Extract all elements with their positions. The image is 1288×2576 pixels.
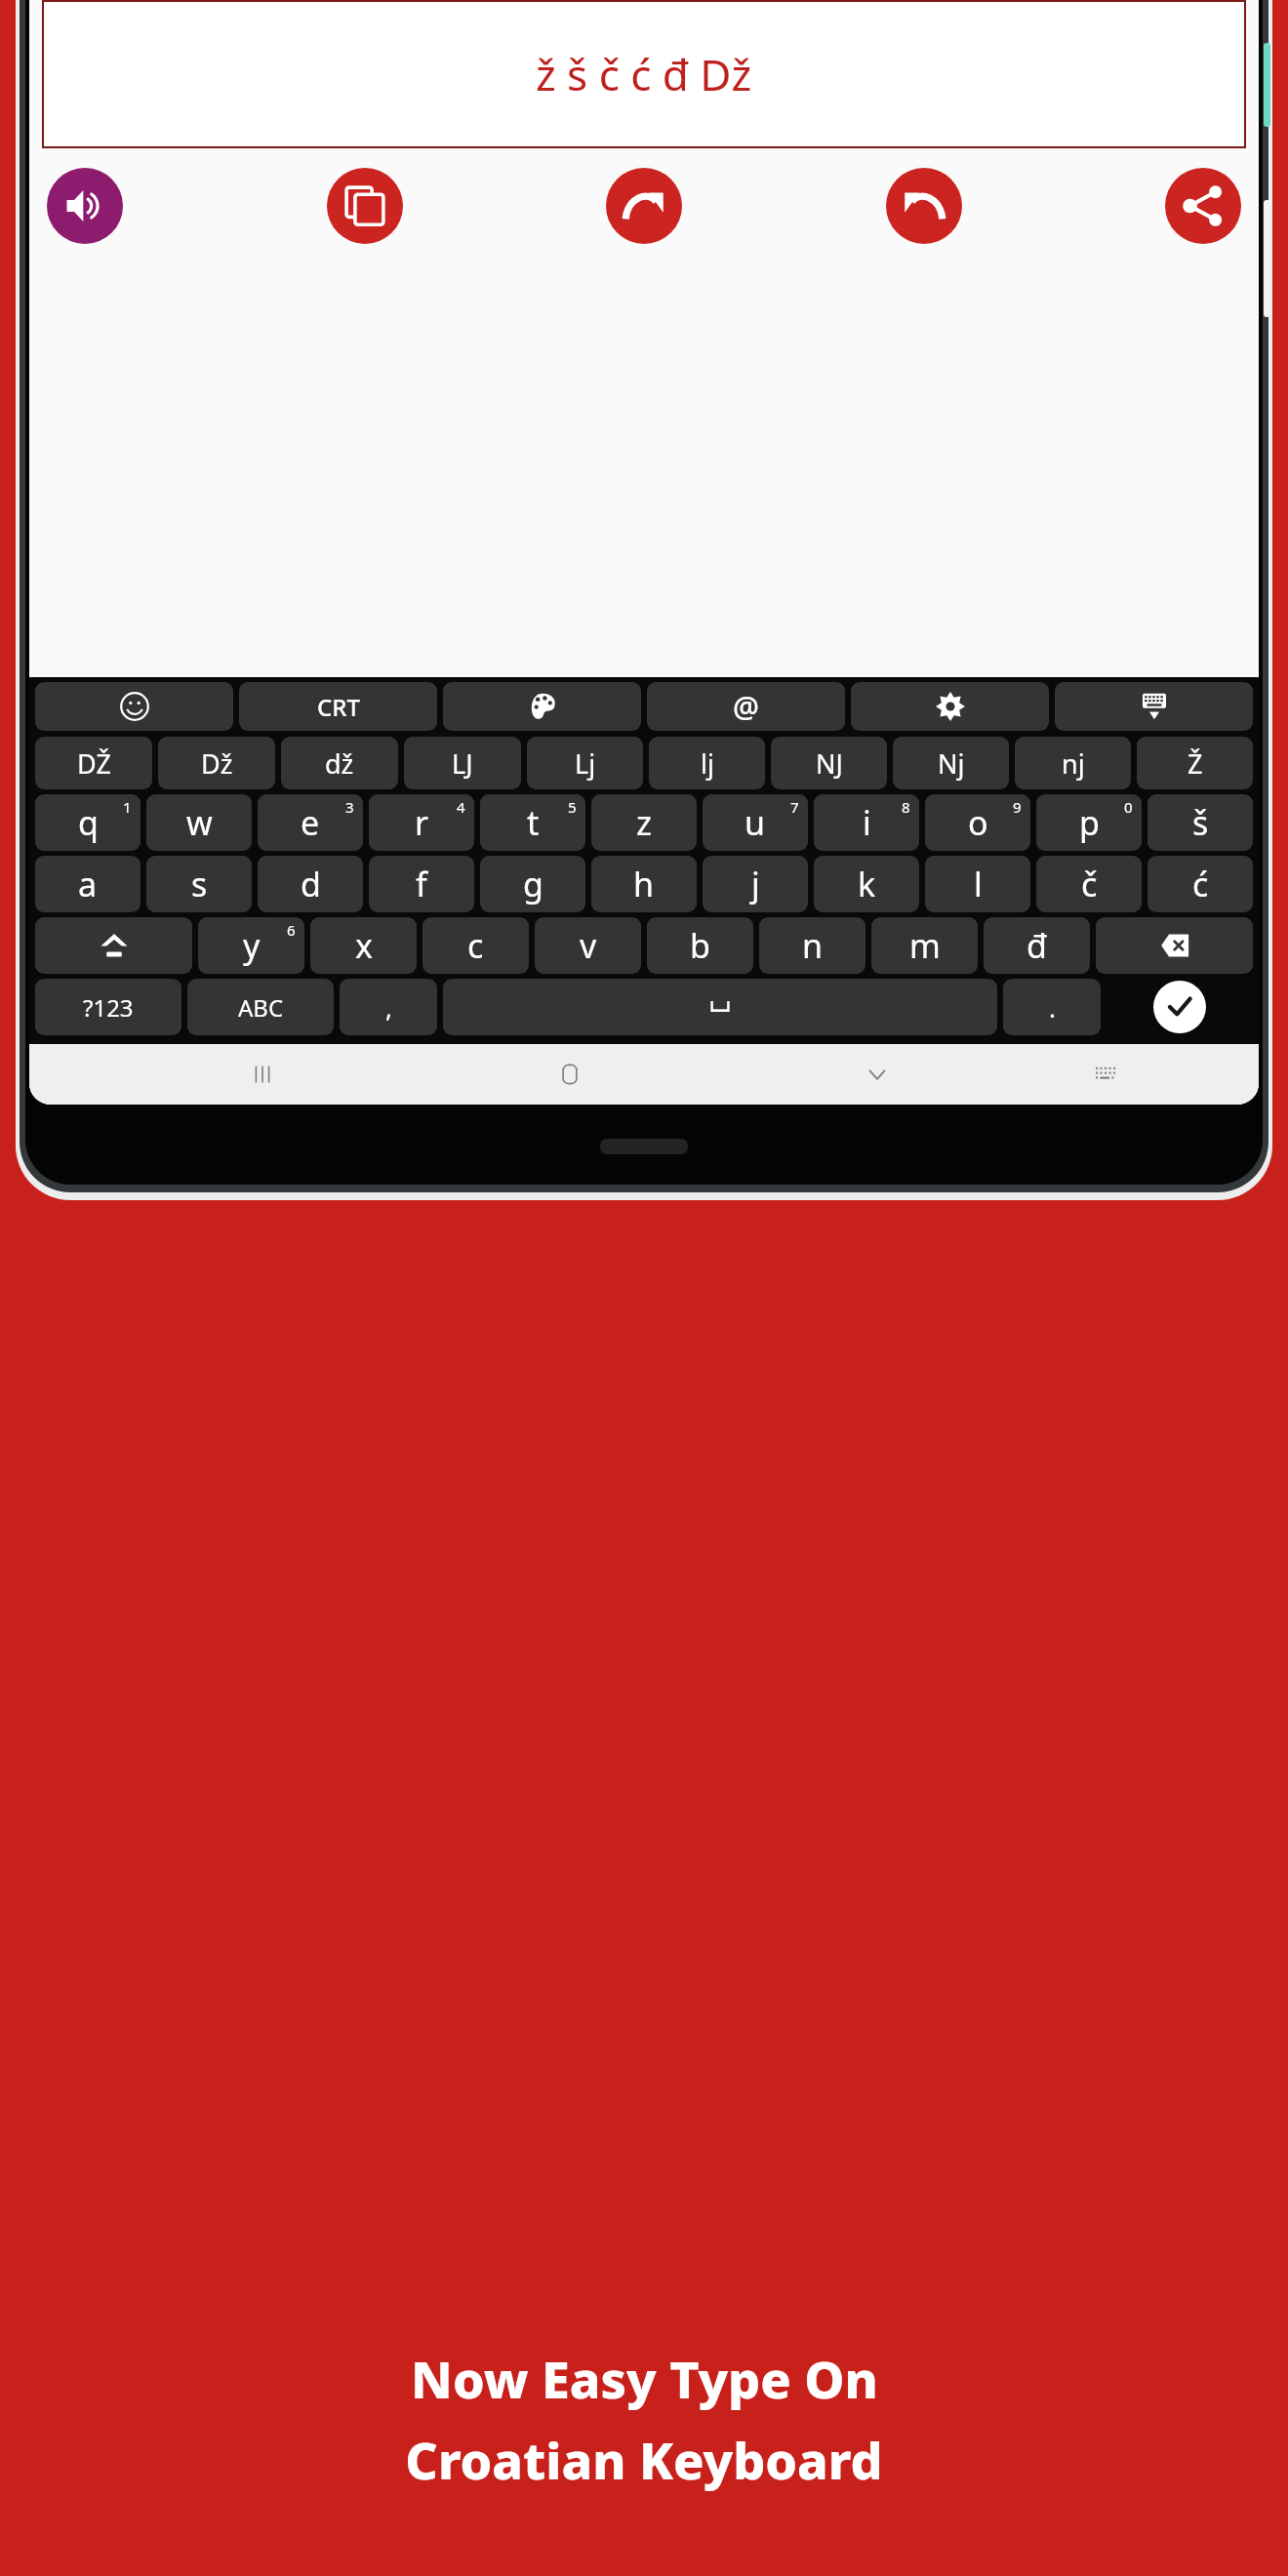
button[interactable]: Key (1096, 917, 1253, 974)
button[interactable]: Hide keyboard (850, 1047, 905, 1102)
button[interactable]: s (146, 856, 252, 912)
button[interactable]: t (480, 794, 585, 851)
staticText: f (416, 862, 427, 906)
button[interactable]: Redo (606, 168, 682, 244)
button[interactable]: n (759, 917, 865, 974)
button[interactable]: Change keyboard (1077, 1047, 1132, 1102)
button[interactable]: v (535, 917, 641, 974)
button[interactable]: Key (35, 917, 192, 974)
button[interactable]: NJ (771, 737, 887, 789)
button[interactable]: LJ (404, 737, 521, 789)
button[interactable]: j (703, 856, 808, 912)
button[interactable]: Key (851, 682, 1049, 731)
staticText: g (523, 862, 543, 906)
button[interactable]: c (423, 917, 529, 974)
button[interactable]: a (35, 856, 141, 912)
button[interactable]: l (925, 856, 1030, 912)
button[interactable]: dž (281, 737, 398, 789)
button[interactable]: d (258, 856, 363, 912)
button[interactable]: ABC (187, 979, 334, 1035)
staticText: nj (1062, 745, 1085, 782)
button[interactable]: u (703, 794, 808, 851)
staticText: u (745, 800, 766, 845)
button[interactable]: w (146, 794, 252, 851)
button[interactable]: nj (1015, 737, 1131, 789)
button[interactable]: f (369, 856, 474, 912)
staticText: n (802, 923, 824, 968)
staticText: 1 (123, 797, 132, 817)
staticText: a (78, 862, 98, 906)
button[interactable]: Ž (1137, 737, 1253, 789)
button[interactable]: lj (649, 737, 765, 789)
staticText: 8 (902, 797, 910, 817)
button[interactable]: i (814, 794, 919, 851)
staticText: b (690, 923, 710, 968)
staticText: r (415, 800, 429, 845)
button[interactable]: Key (35, 682, 233, 731)
button[interactable]: Dž (158, 737, 275, 789)
staticText: ž š č ć đ Dž (536, 45, 752, 103)
staticText: Nj (938, 745, 965, 782)
button[interactable]: h (591, 856, 697, 912)
staticText: c (467, 923, 484, 968)
staticText: m (909, 923, 941, 968)
button[interactable]: ?123 (35, 979, 181, 1035)
button[interactable]: . (1003, 979, 1101, 1035)
button[interactable]: đ (984, 917, 1090, 974)
button[interactable]: Key (443, 979, 997, 1035)
button[interactable]: , (340, 979, 437, 1035)
button[interactable]: r (369, 794, 474, 851)
button[interactable]: š (1147, 794, 1253, 851)
button[interactable]: @ (647, 682, 845, 731)
button[interactable]: Key (1055, 682, 1253, 731)
button[interactable]: y (198, 917, 304, 974)
staticText: LJ (452, 745, 473, 782)
staticText: Croatian Keyboard (405, 2425, 883, 2494)
staticText: 7 (790, 797, 799, 817)
button[interactable]: k (814, 856, 919, 912)
staticText: q (78, 800, 99, 845)
button[interactable]: g (480, 856, 585, 912)
button[interactable]: q (35, 794, 141, 851)
button[interactable]: Undo (886, 168, 962, 244)
button[interactable]: b (647, 917, 753, 974)
button[interactable]: CRT (239, 682, 437, 731)
button[interactable]: DŽ (35, 737, 152, 789)
staticText: š (1192, 800, 1209, 845)
staticText: Lj (575, 745, 596, 782)
staticText: 3 (345, 797, 354, 817)
staticText: č (1081, 862, 1098, 906)
button[interactable]: o (925, 794, 1030, 851)
staticText: p (1079, 800, 1100, 845)
button[interactable]: p (1036, 794, 1142, 851)
staticText: Ž (1187, 745, 1203, 782)
button[interactable]: z (591, 794, 697, 851)
staticText: ć (1192, 862, 1209, 906)
button[interactable]: Nj (893, 737, 1009, 789)
button[interactable]: Copy (327, 168, 403, 244)
staticText: 5 (568, 797, 577, 817)
staticText: t (527, 800, 540, 845)
staticText: y (243, 923, 261, 968)
button[interactable]: Share (1165, 168, 1241, 244)
button[interactable]: e (258, 794, 363, 851)
button[interactable]: ž š č ć đ Dž (42, 0, 1246, 148)
staticText: 0 (1124, 797, 1133, 817)
button[interactable]: m (871, 917, 978, 974)
button[interactable]: Lj (527, 737, 643, 789)
button[interactable]: Key (443, 682, 641, 731)
button[interactable]: Home (543, 1047, 597, 1102)
button[interactable]: č (1036, 856, 1142, 912)
button[interactable]: Recents (235, 1047, 290, 1102)
button[interactable]: Speak (47, 168, 123, 244)
staticText: v (580, 923, 597, 968)
button[interactable]: Enter (1107, 979, 1253, 1035)
staticText: 9 (1013, 797, 1022, 817)
staticText: h (633, 862, 655, 906)
staticText: z (636, 800, 652, 845)
staticText: ?123 (83, 991, 134, 1024)
staticText: NJ (816, 745, 843, 782)
button[interactable]: ć (1147, 856, 1253, 912)
button[interactable]: x (310, 917, 417, 974)
staticText: Dž (201, 745, 233, 782)
